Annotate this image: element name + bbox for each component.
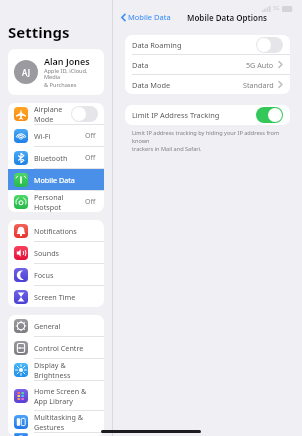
button[interactable]: Bluetooth: [8, 147, 104, 168]
staticText: Mobile Data: [128, 12, 171, 22]
button[interactable]: Data Roaming: [125, 35, 290, 54]
staticText: trackers in Mail and Safari.: [132, 145, 202, 153]
button[interactable]: Sounds: [8, 242, 104, 263]
button[interactable]: Personal Hotspot: [8, 191, 104, 212]
staticText: Home Screen &: [34, 386, 87, 396]
staticText: App Library: [34, 396, 73, 406]
staticText: Sounds: [34, 248, 98, 258]
staticText: Wi-Fi: [34, 131, 85, 141]
staticText: Off: [85, 131, 96, 141]
staticText: Control Centre: [34, 343, 98, 353]
staticText: Notifications: [34, 226, 98, 236]
staticText: & Purchases: [44, 81, 77, 89]
button[interactable]: Data: [125, 55, 290, 74]
staticText: General: [34, 321, 98, 331]
staticText: Data Roaming: [132, 40, 256, 50]
staticText: 5G: [273, 5, 280, 12]
staticText: Focus: [34, 270, 98, 280]
staticText: Multitasking & Gestures: [34, 412, 98, 432]
staticText: Screen Time: [34, 292, 98, 302]
staticText: 5G Auto: [246, 60, 274, 70]
staticText: Personal Hotspot: [34, 192, 85, 212]
button[interactable]: Data Mode: [125, 75, 290, 94]
button[interactable]: Notifications: [8, 220, 104, 241]
staticText: Bluetooth: [34, 153, 85, 163]
staticText: Display & Brightness: [34, 360, 98, 380]
staticText: Mobile Data Options: [187, 12, 268, 23]
button[interactable]: Home Screen &: [8, 381, 104, 410]
staticText: Mobile Data: [34, 175, 98, 185]
staticText: Standard: [243, 80, 274, 90]
button[interactable]: Display & Brightness: [8, 359, 104, 380]
button[interactable]: Screen Time: [8, 286, 104, 307]
staticText: Apple ID, iCloud, Media: [44, 67, 98, 81]
button[interactable]: Limit IP Address Tracking: [125, 105, 290, 125]
button[interactable]: Limit IP Address Tracking: [256, 107, 283, 123]
staticText: Settings: [8, 22, 70, 42]
staticText: Data Mode: [132, 80, 243, 90]
button[interactable]: Mobile Data: [8, 169, 104, 190]
staticText: Airplane Mode: [34, 104, 71, 124]
staticText: Limit IP Address Tracking: [132, 110, 256, 120]
button[interactable]: Mobile Data: [119, 8, 173, 26]
staticText: Off: [85, 197, 96, 207]
button[interactable]: General: [8, 315, 104, 336]
staticText: Limit IP address tracking by hiding your…: [132, 129, 283, 145]
staticText: Off: [85, 153, 96, 163]
button[interactable]: Multitasking & Gestures: [8, 411, 104, 432]
button[interactable]: Airplane Mode: [71, 106, 98, 122]
button[interactable]: Wi-Fi: [8, 125, 104, 146]
button[interactable]: Airplane Mode: [8, 103, 104, 124]
button[interactable]: Control Centre: [8, 337, 104, 358]
staticText: AJ: [22, 67, 30, 78]
button[interactable]: Data Roaming: [256, 37, 283, 53]
button[interactable]: AJ: [8, 49, 104, 95]
staticText: Data: [132, 60, 246, 70]
button[interactable]: Accessibility: [8, 433, 104, 436]
staticText: Alan Jones: [44, 55, 90, 67]
button[interactable]: Focus: [8, 264, 104, 285]
